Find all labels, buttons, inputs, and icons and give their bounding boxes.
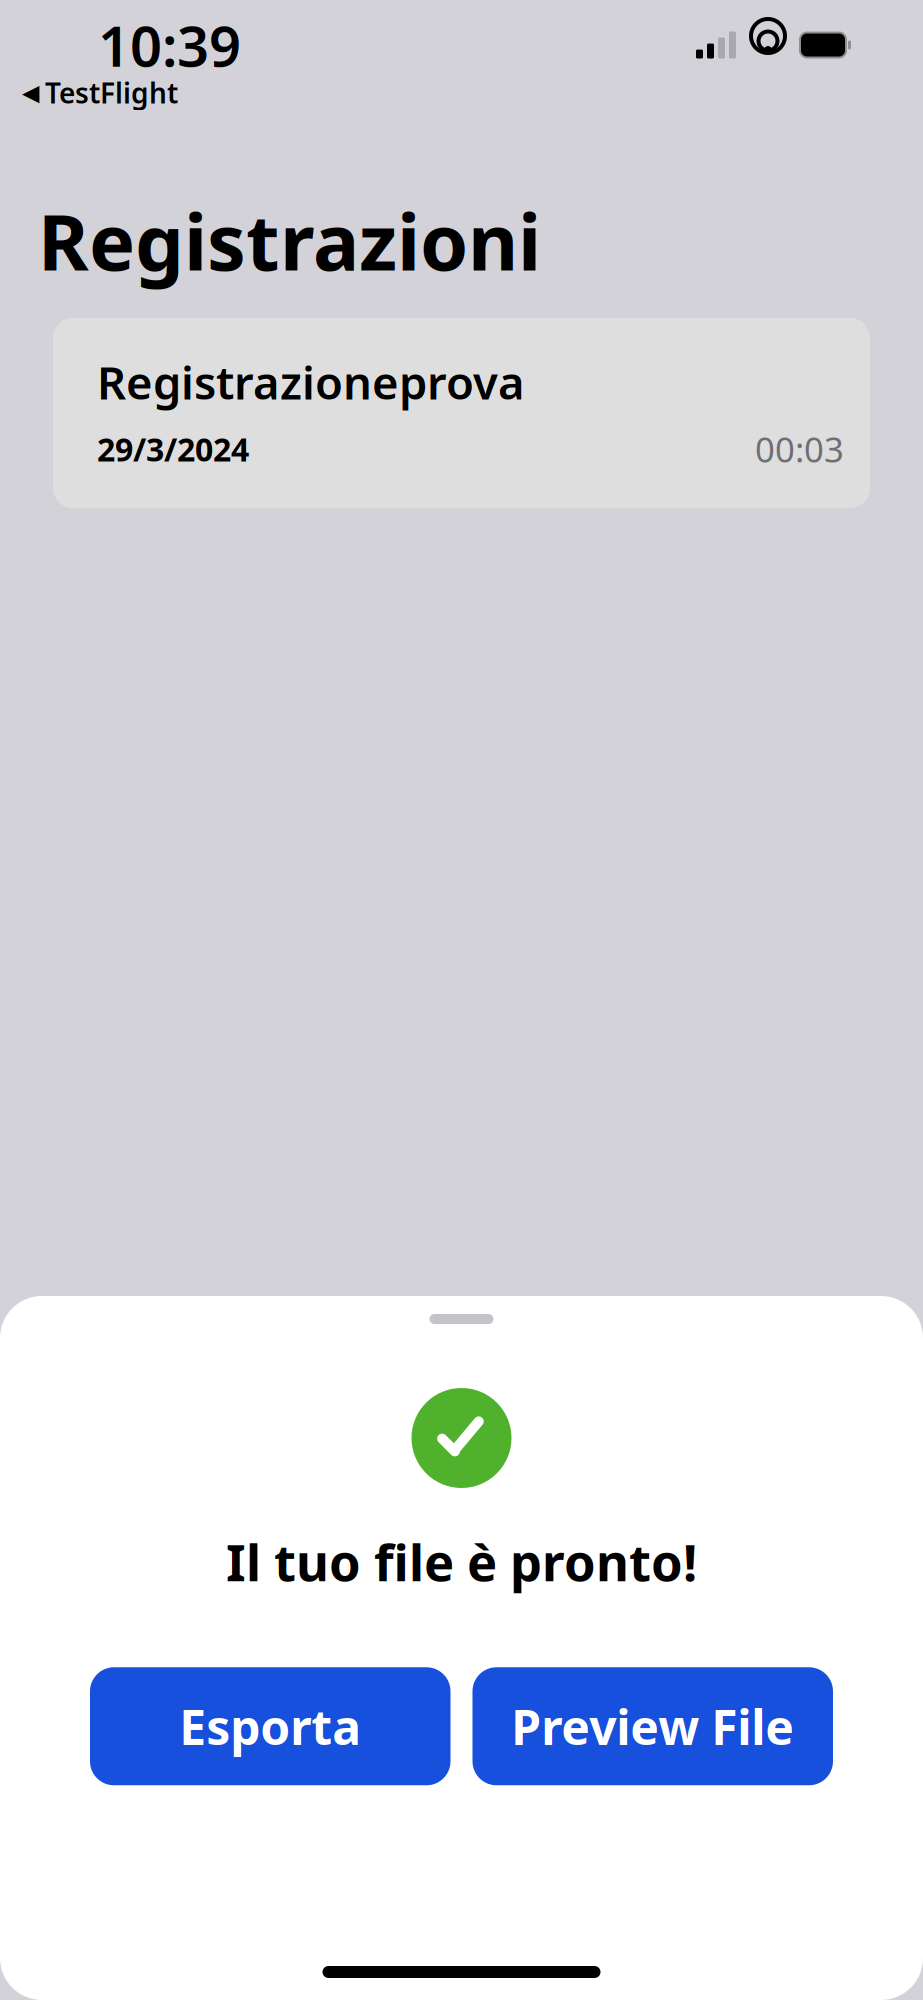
staticText: Il tuo file è pronto! — [226, 1528, 697, 1595]
staticText: Registrazioni — [38, 189, 541, 292]
button[interactable]: Registrazioneprova — [53, 318, 870, 508]
button[interactable]: Preview File — [472, 1667, 833, 1785]
staticText: Registrazioneprova — [97, 352, 525, 412]
staticText: ◀ — [22, 80, 39, 105]
staticText: 00:03 — [755, 426, 844, 472]
staticText: Preview File — [511, 1694, 794, 1758]
staticText: 10:39 — [98, 8, 241, 82]
staticText: TestFlight — [45, 74, 178, 111]
staticText: 29/3/2024 — [97, 428, 249, 470]
staticText: Esporta — [179, 1694, 361, 1758]
button[interactable]: Esporta — [90, 1667, 450, 1785]
